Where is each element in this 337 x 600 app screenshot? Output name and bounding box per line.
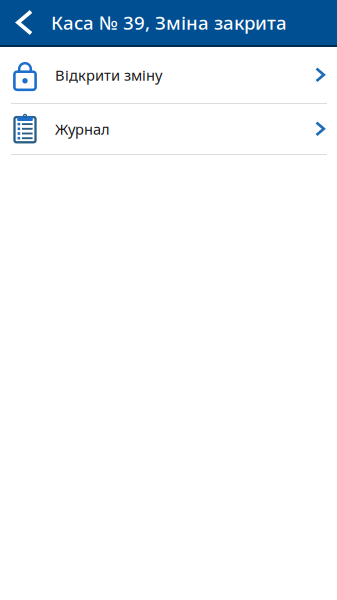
button[interactable]: Журнал [0,104,337,155]
button[interactable]: Back [0,0,39,45]
staticText: Журнал [55,119,110,139]
staticText: Каса № 39, Зміна закрита [51,10,287,35]
button[interactable]: Відкрити зміну [0,47,337,104]
staticText: Відкрити зміну [55,65,162,85]
